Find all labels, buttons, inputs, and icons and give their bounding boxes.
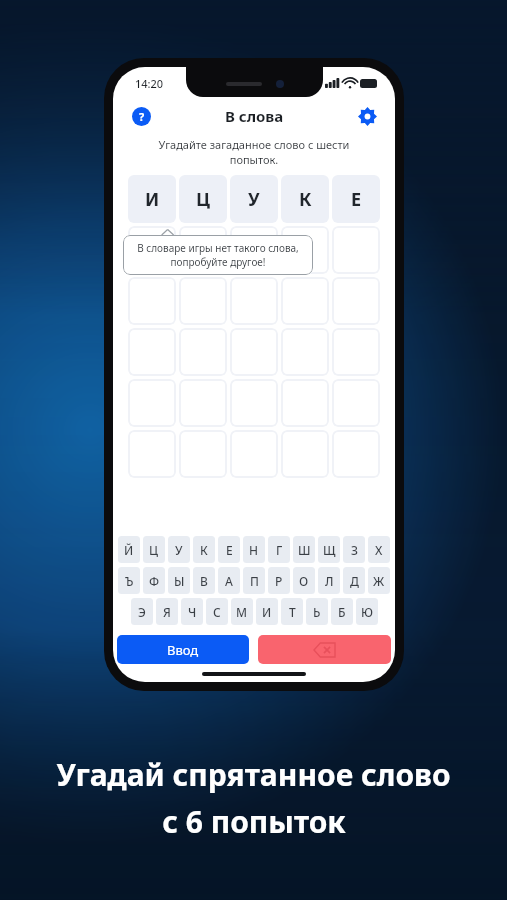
staticText: И <box>262 604 272 620</box>
staticText: Э <box>138 604 146 620</box>
button[interactable]: Ы <box>168 567 190 594</box>
staticText: Н <box>249 542 259 558</box>
staticText: ? <box>139 109 145 124</box>
button[interactable]: И <box>256 598 278 625</box>
staticText: О <box>299 573 309 589</box>
button[interactable]: М <box>231 598 253 625</box>
button[interactable]: Ф <box>143 567 165 594</box>
button[interactable]: Ю <box>356 598 378 625</box>
staticText: Угадай спрятанное слово <box>56 754 451 795</box>
staticText: В <box>200 573 208 589</box>
button[interactable]: Ввод <box>117 635 249 664</box>
button[interactable]: Н <box>243 536 265 563</box>
button[interactable]: Й <box>118 536 140 563</box>
button[interactable]: Ь <box>306 598 328 625</box>
button[interactable]: О <box>293 567 315 594</box>
staticText: Р <box>275 573 283 589</box>
button[interactable]: Help <box>127 102 155 130</box>
staticText: Угадайте загаданное слово с шести попыто… <box>137 137 371 167</box>
button[interactable]: П <box>243 567 265 594</box>
staticText: П <box>250 573 259 589</box>
staticText: М <box>236 604 248 620</box>
staticText: Т <box>289 604 296 620</box>
staticText: Ц <box>149 542 159 558</box>
staticText: Д <box>350 573 359 589</box>
button[interactable]: Ъ <box>118 567 140 594</box>
staticText: Ъ <box>125 573 134 589</box>
staticText: Б <box>338 604 346 620</box>
button[interactable]: Backspace <box>258 635 391 664</box>
button[interactable]: Е <box>218 536 240 563</box>
button[interactable]: Г <box>268 536 290 563</box>
staticText: Ж <box>373 573 385 589</box>
staticText: Л <box>325 573 334 589</box>
staticText: Ввод <box>167 641 199 659</box>
staticText: Ч <box>188 604 197 620</box>
staticText: Х <box>375 542 383 558</box>
button[interactable]: Р <box>268 567 290 594</box>
button[interactable]: У <box>168 536 190 563</box>
staticText: Е <box>351 187 362 212</box>
staticText: Г <box>276 542 283 558</box>
button[interactable]: Д <box>343 567 365 594</box>
staticText: В словаре игры нет такого слова, попробу… <box>131 241 305 269</box>
staticText: Ы <box>174 573 185 589</box>
button[interactable]: Э <box>131 598 153 625</box>
staticText: 14:20 <box>135 76 164 91</box>
staticText: Я <box>163 604 171 620</box>
button[interactable]: В <box>193 567 215 594</box>
button[interactable]: Ж <box>368 567 390 594</box>
staticText: Ф <box>149 573 160 589</box>
staticText: З <box>351 542 358 558</box>
staticText: У <box>248 187 260 212</box>
staticText: К <box>299 187 312 212</box>
staticText: Й <box>124 542 134 558</box>
staticText: С <box>213 604 221 620</box>
staticText: У <box>175 542 183 558</box>
staticText: В слова <box>225 106 284 126</box>
staticText: Щ <box>323 542 336 558</box>
button[interactable]: Я <box>156 598 178 625</box>
button[interactable]: Ц <box>143 536 165 563</box>
button[interactable]: З <box>343 536 365 563</box>
button[interactable]: К <box>193 536 215 563</box>
staticText: А <box>225 573 233 589</box>
button[interactable]: Settings <box>353 102 381 130</box>
button[interactable]: Щ <box>318 536 340 563</box>
staticText: К <box>200 542 208 558</box>
button[interactable]: С <box>206 598 228 625</box>
staticText: с 6 попыток <box>162 801 346 842</box>
button[interactable]: Ш <box>293 536 315 563</box>
button[interactable]: Х <box>368 536 390 563</box>
button[interactable]: А <box>218 567 240 594</box>
button[interactable]: Б <box>331 598 353 625</box>
staticText: Ь <box>313 604 321 620</box>
button[interactable]: Л <box>318 567 340 594</box>
staticText: Ш <box>298 542 311 558</box>
button[interactable]: Т <box>281 598 303 625</box>
staticText: И <box>145 187 160 212</box>
staticText: Е <box>226 542 233 558</box>
staticText: Ю <box>361 604 374 620</box>
staticText: Ц <box>196 187 210 212</box>
button[interactable]: Ч <box>181 598 203 625</box>
